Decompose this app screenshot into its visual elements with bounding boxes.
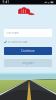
staticText: I agree to the terms & conditions [8, 41, 28, 43]
button[interactable]: Register [4, 59, 52, 67]
staticText: 9:41 [2, 0, 9, 4]
button[interactable]: Continue [4, 47, 52, 55]
button[interactable]: Username [4, 29, 52, 37]
staticText: Continue [21, 49, 35, 53]
button[interactable]: I agree to the terms & conditions [4, 40, 52, 44]
staticText: Username [6, 31, 19, 35]
staticText: Register [22, 61, 34, 65]
